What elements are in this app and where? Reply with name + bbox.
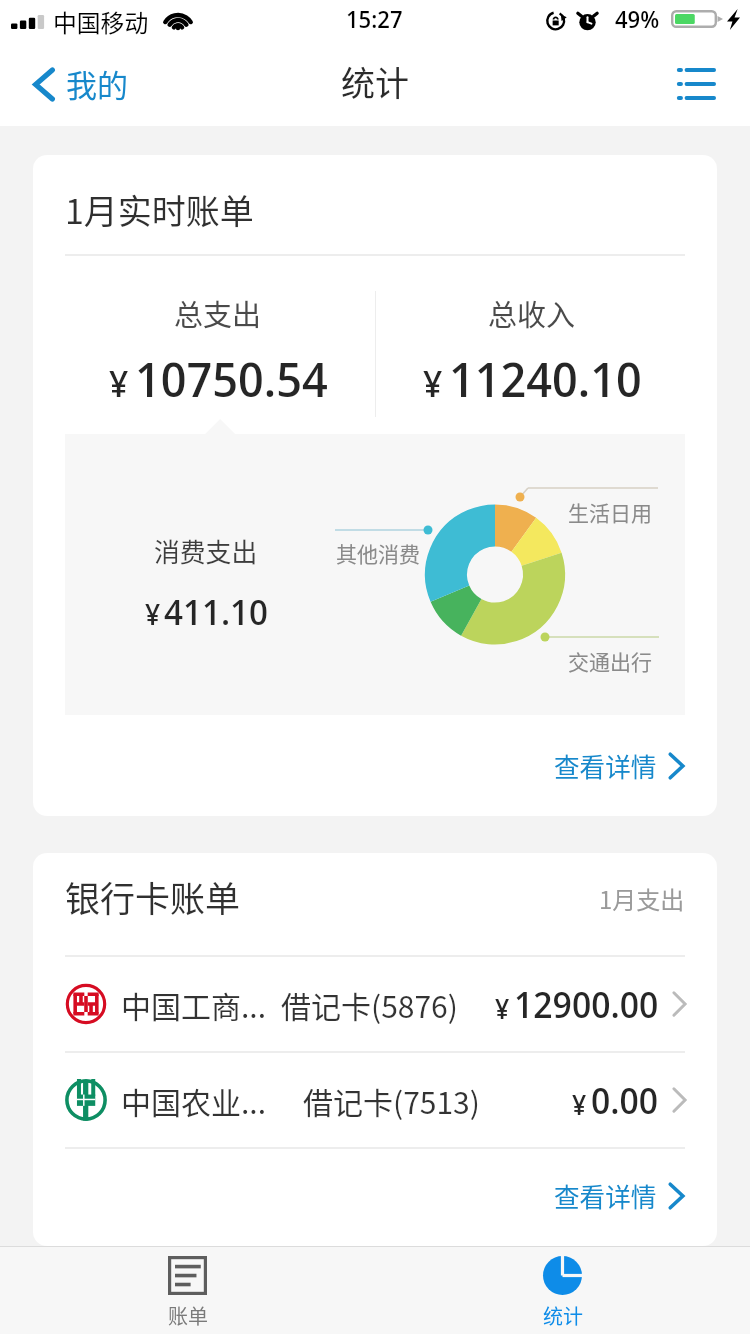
staticText: 49%: [615, 3, 660, 35]
staticText: 账单: [168, 1301, 208, 1330]
staticText: 中国农业...: [121, 1079, 267, 1122]
staticText: ¥: [109, 359, 129, 408]
staticText: 查看详情: [554, 747, 657, 784]
staticText: 查看详情: [554, 1177, 657, 1214]
staticText: 借记卡(5876): [281, 983, 458, 1026]
button[interactable]: 账单: [0, 1247, 375, 1334]
button[interactable]: 统计: [375, 1247, 750, 1334]
staticText: 1月实时账单: [65, 185, 254, 234]
staticText: 12900.00: [514, 980, 659, 1029]
staticText: 其他消费: [336, 538, 420, 568]
staticText: 统计: [341, 57, 409, 106]
button[interactable]: 中国工商...: [33, 957, 717, 1051]
staticText: 411.10: [164, 587, 268, 635]
staticText: 银行卡账单: [65, 871, 241, 922]
staticText: 总支出: [174, 292, 262, 334]
staticText: 统计: [543, 1301, 583, 1330]
button[interactable]: 我的: [0, 50, 148, 123]
button[interactable]: 中国农业...: [33, 1053, 717, 1147]
staticText: ¥: [572, 1087, 587, 1123]
staticText: 生活日用: [568, 497, 652, 527]
staticText: 1月支出: [599, 881, 685, 916]
staticText: 消费支出: [154, 532, 258, 569]
staticText: ¥: [495, 991, 510, 1027]
staticText: ¥: [423, 359, 443, 408]
button[interactable]: 查看详情: [33, 1149, 717, 1246]
staticText: 中国工商...: [121, 983, 267, 1026]
staticText: 10750.54: [135, 346, 328, 411]
button[interactable]: 查看详情: [33, 715, 717, 816]
staticText: 0.00: [591, 1076, 659, 1125]
staticText: 交通出行: [568, 646, 652, 676]
staticText: 借记卡(7513): [303, 1079, 480, 1122]
staticText: 中国移动: [53, 4, 149, 38]
button[interactable]: List: [649, 50, 750, 116]
staticText: 总收入: [488, 292, 576, 334]
staticText: ¥: [145, 595, 161, 633]
staticText: 我的: [66, 61, 128, 106]
staticText: 11240.10: [449, 346, 642, 411]
staticText: 15:27: [346, 3, 403, 35]
